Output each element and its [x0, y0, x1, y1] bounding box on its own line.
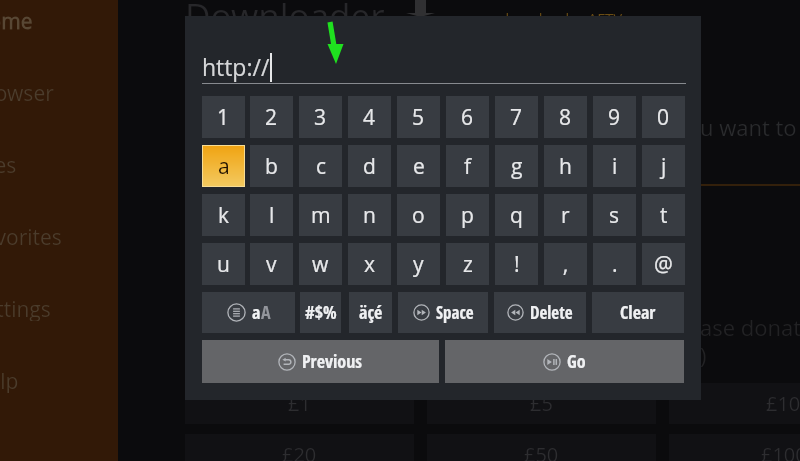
- button[interactable]: 2: [250, 96, 293, 138]
- staticText: 7: [510, 103, 523, 132]
- staticText: i: [612, 152, 618, 181]
- button[interactable]: 4: [348, 96, 391, 138]
- staticText: Browser: [0, 79, 54, 105]
- staticText: 2: [265, 103, 278, 132]
- staticText: http://: [202, 51, 270, 82]
- staticText: f: [464, 152, 472, 181]
- button[interactable]: u: [202, 243, 245, 285]
- button[interactable]: x: [348, 243, 391, 285]
- button[interactable]: d: [348, 145, 391, 187]
- button[interactable]: £50: [427, 434, 656, 461]
- staticText: b: [265, 152, 278, 181]
- button[interactable]: n: [348, 194, 391, 236]
- button[interactable]: j: [642, 145, 685, 187]
- button[interactable]: Favorites: [0, 223, 131, 249]
- staticText: 4: [363, 103, 376, 132]
- button[interactable]: w: [299, 243, 342, 285]
- button[interactable]: 9: [593, 96, 636, 138]
- button[interactable]: Home: [0, 7, 131, 33]
- button[interactable]: o: [397, 194, 440, 236]
- button[interactable]: 7: [495, 96, 538, 138]
- button[interactable]: k: [202, 194, 245, 236]
- staticText: £1: [288, 390, 311, 417]
- button[interactable]: s: [593, 194, 636, 236]
- button[interactable]: h: [544, 145, 587, 187]
- button[interactable]: ,: [544, 243, 587, 285]
- staticText: .: [612, 250, 618, 279]
- button[interactable]: £100: [669, 434, 800, 461]
- button[interactable]: @: [642, 243, 685, 285]
- button[interactable]: 3: [299, 96, 342, 138]
- button[interactable]: Accents: [349, 292, 392, 333]
- staticText: r: [561, 201, 570, 230]
- staticText: u: [217, 250, 230, 279]
- button[interactable]: Help: [0, 367, 131, 393]
- staticText: 6: [461, 103, 474, 132]
- button[interactable]: £5: [427, 383, 656, 424]
- button[interactable]: v: [250, 243, 293, 285]
- button[interactable]: Settings: [0, 295, 131, 321]
- button[interactable]: q: [495, 194, 538, 236]
- button[interactable]: £10: [669, 383, 800, 424]
- staticText: £50: [524, 441, 559, 461]
- button[interactable]: p: [446, 194, 489, 236]
- button[interactable]: a: [203, 146, 244, 186]
- staticText: y: [413, 250, 424, 279]
- staticText: £5: [530, 390, 553, 417]
- button[interactable]: y: [397, 243, 440, 285]
- button[interactable]: 0: [642, 96, 685, 138]
- staticText: m: [311, 201, 331, 230]
- button[interactable]: Go: [445, 340, 684, 383]
- button[interactable]: c: [299, 145, 342, 187]
- button[interactable]: Downloader: [185, 0, 385, 40]
- button[interactable]: 5: [397, 96, 440, 138]
- staticText: v: [266, 250, 277, 279]
- button[interactable]: 6: [446, 96, 489, 138]
- staticText: 5: [412, 103, 425, 132]
- button[interactable]: Previous: [202, 340, 439, 383]
- button[interactable]: Delete: [494, 292, 586, 333]
- staticText: downloader AFTV: [500, 8, 623, 28]
- button[interactable]: 1: [202, 96, 245, 138]
- staticText: äçé: [359, 300, 383, 325]
- staticText: o: [412, 201, 425, 230]
- button[interactable]: Browser: [0, 79, 131, 105]
- staticText: Files: [0, 151, 17, 177]
- button[interactable]: r: [544, 194, 587, 236]
- button[interactable]: 8: [544, 96, 587, 138]
- button[interactable]: !: [495, 243, 538, 285]
- staticText: Go: [567, 349, 586, 374]
- staticText: h: [559, 152, 572, 181]
- button[interactable]: Space: [398, 292, 488, 333]
- button[interactable]: m: [299, 194, 342, 236]
- staticText: g: [511, 152, 523, 181]
- button[interactable]: Clear: [592, 292, 684, 333]
- button[interactable]: g: [495, 145, 538, 187]
- staticText: Space: [436, 301, 474, 324]
- staticText: n: [363, 201, 376, 230]
- button[interactable]: i: [593, 145, 636, 187]
- staticText: 9: [608, 103, 621, 132]
- staticText: £100: [761, 441, 800, 461]
- staticText: Downloader: [185, 0, 385, 40]
- button[interactable]: Symbols: [300, 292, 341, 333]
- staticText: #$%: [305, 300, 337, 325]
- staticText: 0: [657, 103, 670, 132]
- button[interactable]: z: [446, 243, 489, 285]
- button[interactable]: £20: [185, 434, 414, 461]
- staticText: Delete: [530, 301, 573, 324]
- button[interactable]: e: [397, 145, 440, 187]
- button[interactable]: Change case: [202, 292, 295, 333]
- staticText: e: [413, 152, 425, 181]
- button[interactable]: £1: [185, 383, 414, 424]
- button[interactable]: b: [250, 145, 293, 187]
- button[interactable]: .: [593, 243, 636, 285]
- button[interactable]: t: [642, 194, 685, 236]
- staticText: u want to do?: [700, 112, 800, 142]
- staticText: 3: [314, 103, 327, 132]
- staticText: c: [316, 152, 326, 181]
- button[interactable]: Files: [0, 151, 131, 177]
- button[interactable]: l: [250, 194, 293, 236]
- button[interactable]: f: [446, 145, 489, 187]
- staticText: A: [261, 300, 271, 325]
